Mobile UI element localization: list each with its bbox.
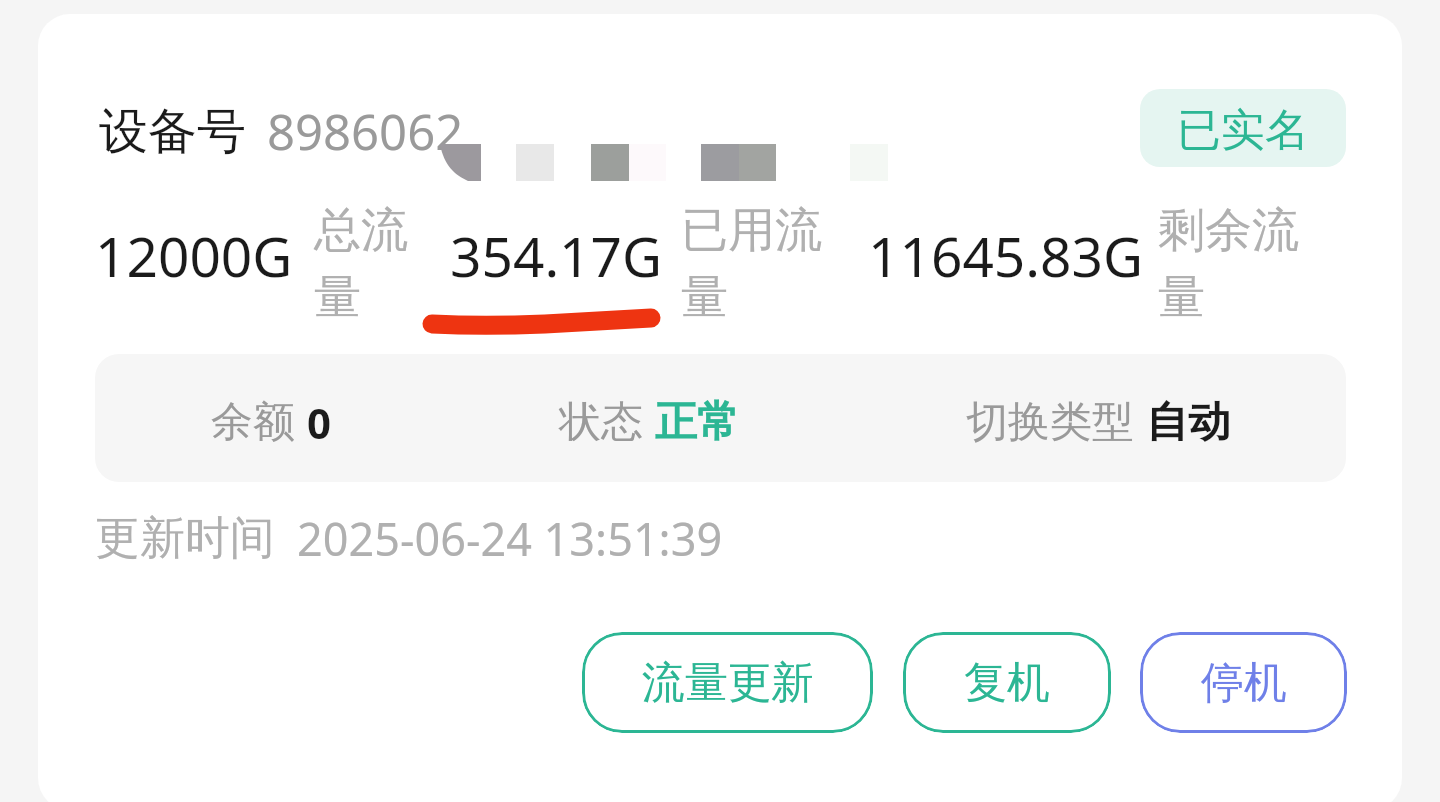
staticText: 已实名: [1177, 103, 1309, 158]
staticText: 设备号: [99, 101, 246, 163]
button[interactable]: 流量更新: [582, 632, 873, 733]
button[interactable]: [38, 14, 1402, 802]
staticText: 停机: [1201, 656, 1287, 710]
staticText: 8986062: [267, 98, 464, 165]
button[interactable]: 12000G: [95, 183, 293, 328]
staticText: 总流量: [314, 201, 442, 327]
staticText: 切换类型: [966, 396, 1134, 449]
staticText: 已用流量: [681, 201, 841, 327]
button[interactable]: 切换类型: [966, 396, 1230, 449]
button[interactable]: 余额: [211, 394, 332, 451]
button[interactable]: 状态: [559, 396, 739, 449]
staticText: 复机: [964, 656, 1050, 710]
staticText: 更新时间: [95, 510, 275, 567]
staticText: 自动: [1146, 396, 1230, 449]
staticText: 12000G: [95, 218, 293, 293]
staticText: 2025-06-24 13:51:39: [297, 508, 723, 569]
staticText: 354.17G: [450, 218, 663, 293]
button[interactable]: 354.17G: [450, 183, 663, 328]
staticText: 正常: [655, 396, 739, 449]
staticText: 11645.83G: [868, 218, 1144, 293]
button[interactable]: 停机: [1140, 632, 1347, 733]
button[interactable]: 复机: [903, 632, 1111, 733]
staticText: 状态: [559, 396, 643, 449]
staticText: 流量更新: [642, 656, 814, 710]
button[interactable]: 11645.83G: [868, 183, 1144, 328]
button[interactable]: 已实名: [1140, 89, 1346, 167]
other: Masked device identifier: [0, 0, 1440, 802]
staticText: 剩余流量: [1158, 201, 1318, 327]
staticText: 余额: [211, 396, 295, 449]
staticText: 0: [307, 394, 332, 451]
